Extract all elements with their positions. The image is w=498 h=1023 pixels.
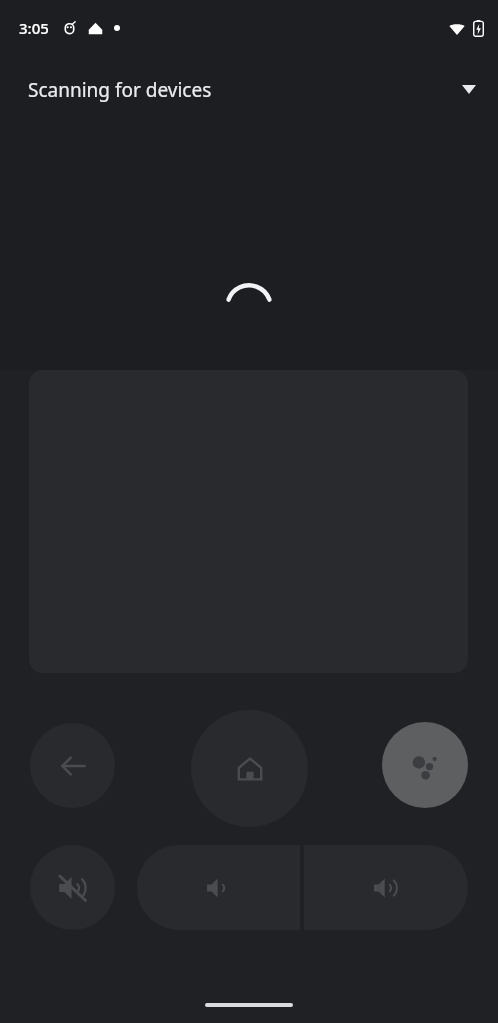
button[interactable]: Scanning for devices bbox=[0, 56, 498, 123]
button[interactable]: Assistant bbox=[382, 722, 468, 808]
staticText: Scanning for devices bbox=[28, 77, 212, 103]
staticText: 3:05 bbox=[19, 18, 49, 38]
button[interactable]: Home bbox=[191, 710, 308, 827]
button[interactable]: Volume up bbox=[304, 845, 468, 930]
button[interactable]: Back bbox=[30, 723, 115, 808]
button[interactable]: Mute bbox=[30, 845, 115, 930]
button[interactable]: Volume down bbox=[137, 845, 300, 930]
